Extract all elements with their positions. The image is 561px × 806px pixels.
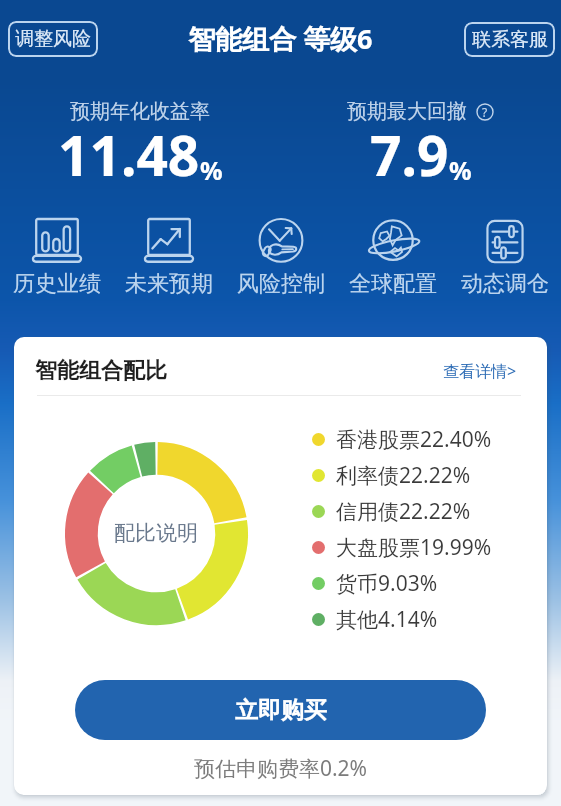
- staticText: 联系客服: [472, 28, 548, 52]
- staticText: 调整风险: [15, 27, 91, 51]
- staticText: 预期最大回撤: [347, 99, 467, 124]
- staticText: 立即购买: [235, 696, 327, 725]
- button[interactable]: 动态调仓: [449, 219, 561, 298]
- staticText: 11.48: [58, 117, 200, 192]
- button[interactable]: 联系客服: [464, 22, 555, 57]
- staticText: 风险控制: [237, 270, 325, 298]
- staticText: 智能组合配比: [35, 357, 167, 385]
- staticText: 香港股票22.40%: [336, 425, 492, 454]
- staticText: 其他4.14%: [336, 605, 438, 634]
- button[interactable]: 调整风险: [8, 21, 98, 57]
- staticText: 货币9.03%: [336, 569, 438, 598]
- button[interactable]: 帮助说明: [476, 103, 494, 121]
- button[interactable]: 全球配置: [337, 219, 449, 298]
- staticText: 配比说明: [114, 520, 198, 546]
- staticText: %: [200, 153, 223, 187]
- staticText: 7.9: [370, 117, 449, 192]
- button[interactable]: 查看详情>: [443, 360, 517, 382]
- staticText: 未来预期: [125, 270, 213, 298]
- staticText: 全球配置: [349, 270, 437, 298]
- staticText: 预估申购费率0.2%: [14, 754, 547, 783]
- button[interactable]: 历史业绩: [0, 219, 113, 298]
- button[interactable]: 未来预期: [113, 219, 225, 298]
- staticText: 历史业绩: [13, 270, 101, 298]
- staticText: 智能组合 等级6: [188, 20, 373, 57]
- staticText: 查看详情>: [443, 360, 517, 382]
- button[interactable]: 立即购买: [75, 680, 486, 740]
- staticText: 预期年化收益率: [70, 99, 210, 124]
- staticText: %: [449, 153, 472, 187]
- staticText: 信用债22.22%: [336, 497, 471, 526]
- staticText: ?: [482, 104, 488, 120]
- button[interactable]: 风险控制: [225, 219, 337, 298]
- staticText: 大盘股票19.99%: [336, 533, 492, 562]
- staticText: 动态调仓: [461, 270, 549, 298]
- staticText: 利率债22.22%: [336, 461, 471, 490]
